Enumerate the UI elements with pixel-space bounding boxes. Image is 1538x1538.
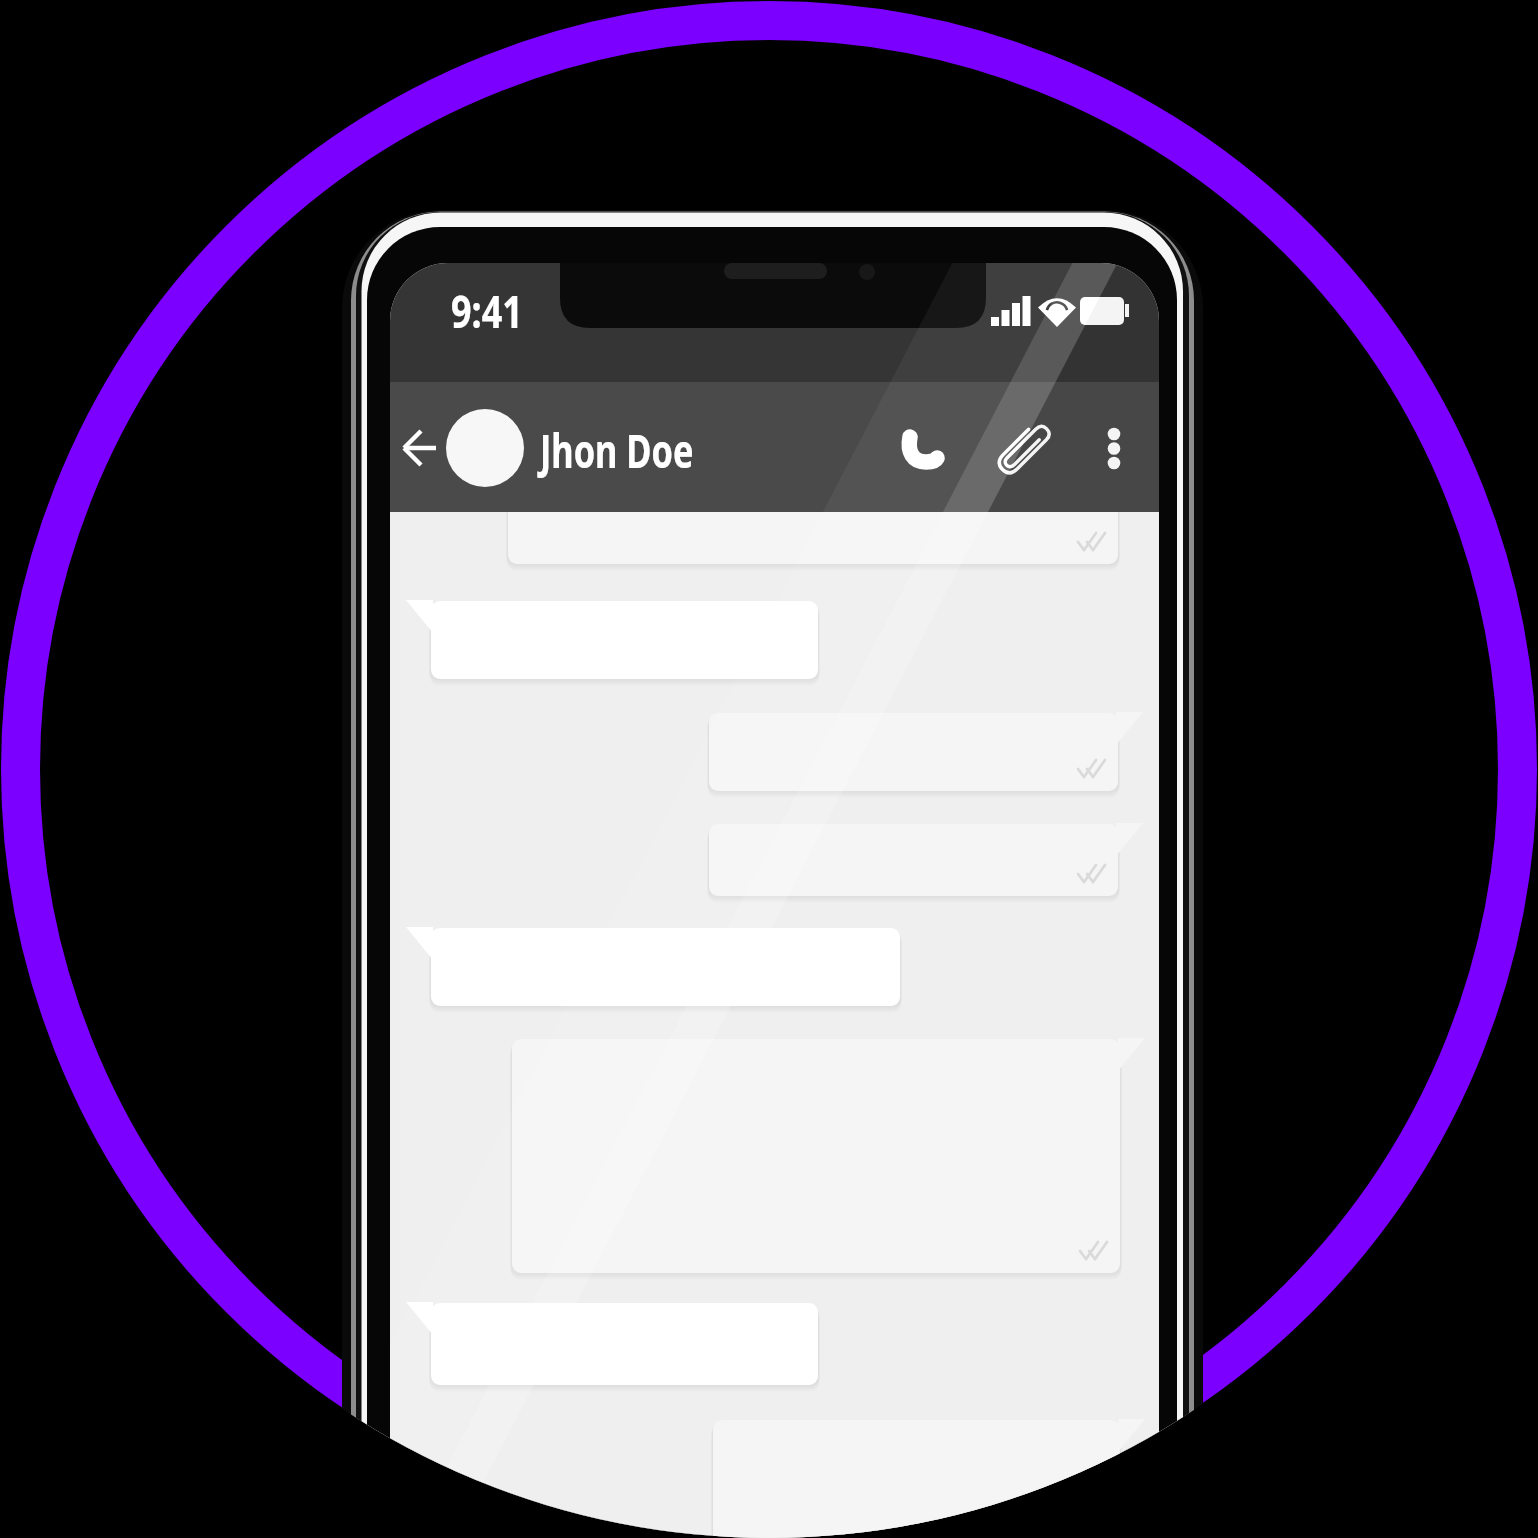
button[interactable]: More options [1078,386,1152,508]
button[interactable]: Jhon Doe [444,386,760,508]
button[interactable]: Attach file [986,386,1062,508]
button[interactable]: Call [886,386,962,508]
button[interactable]: Message [406,601,818,681]
button[interactable]: Message [713,1420,1145,1520]
button[interactable]: Message [406,928,900,1008]
button[interactable]: Message [709,824,1145,898]
button[interactable]: Message [709,713,1145,793]
button[interactable]: Message [406,1303,818,1387]
button[interactable]: Back [392,386,444,508]
button[interactable]: Message [508,514,1145,566]
